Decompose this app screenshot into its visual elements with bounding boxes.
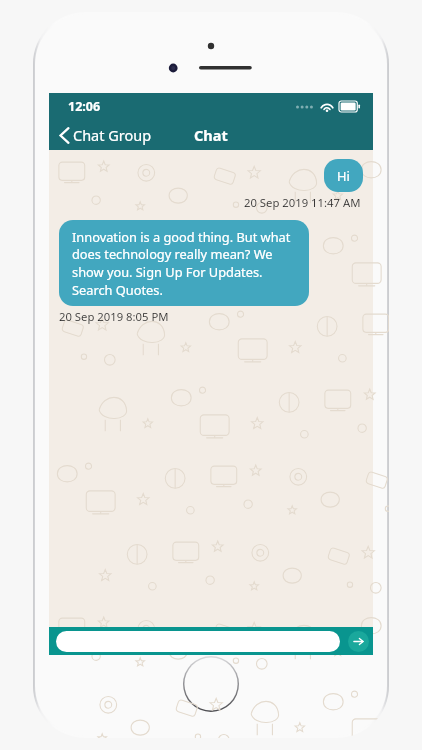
staticText: Chat	[194, 125, 228, 145]
button[interactable]: Innovation is a good thing. But what doe…	[59, 220, 309, 306]
staticText: Innovation is a good thing. But what doe…	[72, 228, 296, 298]
staticText: Hi	[337, 167, 350, 184]
staticText: 20 Sep 2019 11:47 AM	[244, 195, 361, 210]
button[interactable]: Chat Group	[49, 122, 160, 148]
staticText: 12:06	[68, 98, 101, 115]
button[interactable]: Send	[348, 631, 369, 652]
staticText: Chat Group	[73, 125, 152, 145]
button[interactable]	[56, 631, 340, 652]
staticText: 20 Sep 2019 8:05 PM	[59, 309, 169, 324]
button[interactable]: Hi	[324, 159, 363, 192]
